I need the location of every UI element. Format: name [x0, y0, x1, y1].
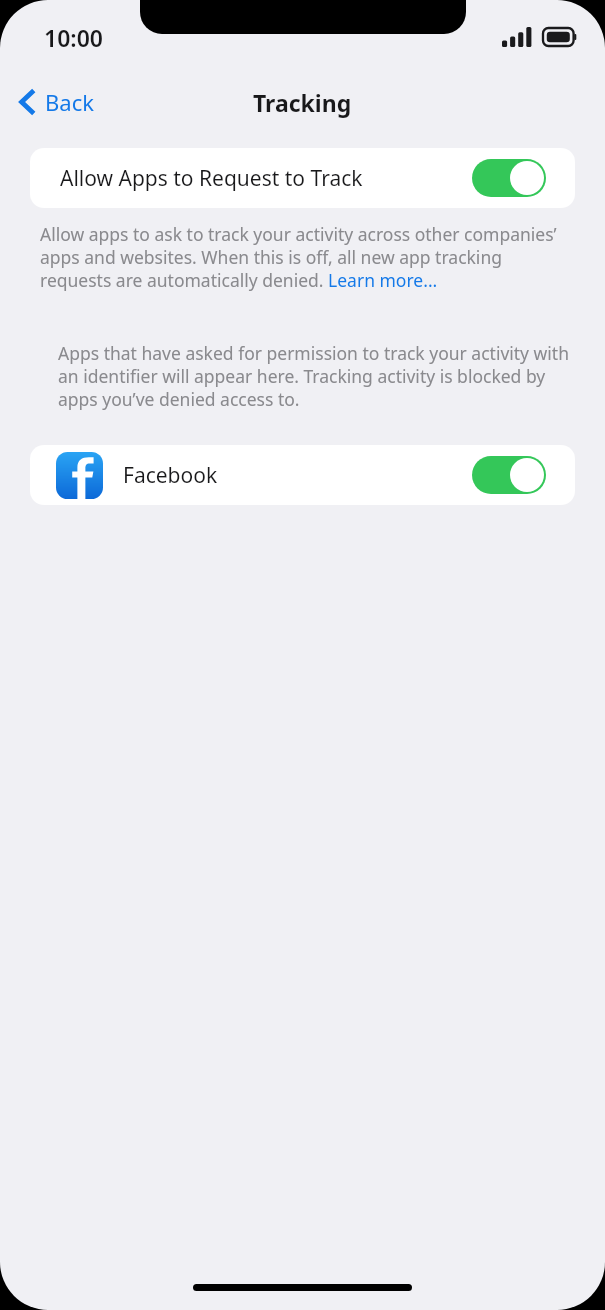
button[interactable]: Allow Apps to Request to Track [30, 148, 575, 208]
button[interactable]: Back [14, 81, 100, 123]
staticText: Allow apps to ask to track your activity… [40, 222, 575, 293]
button[interactable]: Facebook [30, 445, 575, 505]
staticText: Facebook [123, 461, 472, 490]
staticText: 10:00 [44, 22, 103, 53]
staticText: Allow Apps to Request to Track [60, 164, 472, 193]
button[interactable]: Toggle [472, 456, 546, 494]
staticText: Tracking [253, 87, 352, 118]
staticText: Back [45, 87, 94, 117]
button[interactable]: Toggle [472, 159, 546, 197]
staticText: Apps that have asked for permission to t… [58, 341, 577, 412]
